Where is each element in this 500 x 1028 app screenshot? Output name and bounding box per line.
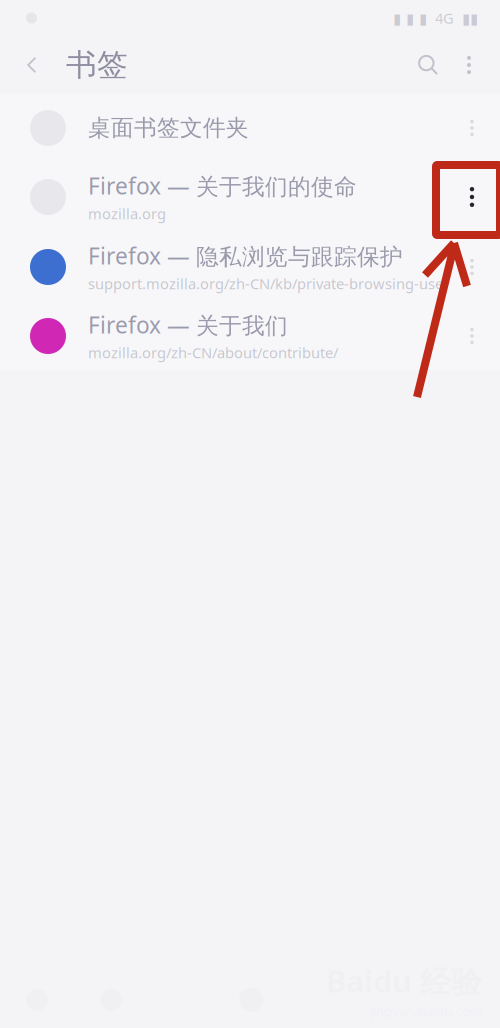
staticText: Firefox — 隐私浏览与跟踪保护 [88,241,403,271]
staticText: Firefox — 关于我们 [88,310,288,340]
staticText: Firefox — 关于我们的使命 [88,171,357,201]
button[interactable]: Search [406,43,450,87]
staticText: support.mozilla.org/zh-CN/kb/private-bro… [88,274,443,293]
button[interactable]: More options [450,43,488,87]
staticText: ▮ ▮ ▮ 4G ▮▮ [393,8,478,28]
button[interactable]: Firefox — 关于我们 [0,302,500,370]
staticText: mozilla.org [88,204,166,223]
button[interactable]: Firefox — 隐私浏览与跟踪保护 [0,232,500,302]
staticText: 桌面书签文件夹 [88,114,249,142]
staticText: 书签 [66,46,128,84]
button[interactable]: 桌面书签文件夹 [0,94,500,162]
button[interactable]: Back [10,43,54,87]
staticText: mozilla.org/zh-CN/about/contribute/ [88,343,338,362]
button[interactable]: Firefox — 关于我们的使命 [0,162,500,232]
